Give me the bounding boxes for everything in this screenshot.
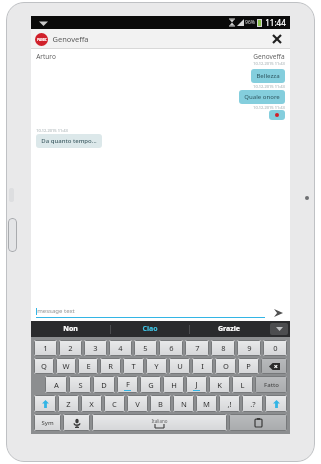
button[interactable] (275, 113, 279, 117)
staticText: Grazie (218, 324, 240, 334)
button[interactable]: 6 (159, 340, 183, 356)
staticText: Arturo (36, 52, 56, 61)
staticText: 6 (169, 343, 174, 353)
staticText: N (181, 399, 187, 409)
button[interactable]: Voice input (63, 414, 90, 431)
button[interactable]: Non (31, 321, 110, 337)
button[interactable]: 9 (237, 340, 261, 356)
staticText: 5 (143, 343, 148, 353)
button[interactable]: A (45, 376, 67, 393)
button[interactable]: 8 (211, 340, 235, 356)
button[interactable]: Backspace (261, 358, 287, 374)
button[interactable]: Shift (265, 395, 287, 412)
staticText: L (240, 380, 245, 390)
staticText: G (148, 380, 154, 390)
button[interactable]: O (215, 358, 236, 374)
button[interactable]: H (163, 376, 184, 393)
button[interactable]: T (123, 358, 144, 374)
staticText: M (203, 399, 210, 409)
button[interactable]: ,! (219, 395, 240, 412)
button[interactable]: E (78, 358, 98, 374)
button[interactable]: J (186, 376, 207, 393)
button[interactable]: F (117, 376, 138, 393)
button[interactable]: I (192, 358, 213, 374)
staticText: K (217, 380, 222, 390)
button[interactable]: Send (271, 306, 285, 320)
button[interactable]: Clipboard (229, 414, 287, 431)
staticText: U (177, 361, 183, 371)
button[interactable]: Close (268, 30, 286, 48)
button[interactable]: P (238, 358, 259, 374)
staticText: 1 (43, 343, 48, 353)
button[interactable]: 2 (59, 340, 82, 356)
staticText: 10.12.2015 11:43 (36, 128, 68, 133)
staticText: Z (66, 399, 71, 409)
staticText: ,! (227, 399, 232, 409)
button[interactable]: Da quanto tempo... (36, 134, 102, 148)
button[interactable]: S (69, 376, 91, 393)
staticText: F (126, 379, 130, 389)
button[interactable]: X (81, 395, 102, 412)
button[interactable]: 4 (109, 340, 132, 356)
staticText: H (171, 380, 177, 390)
button[interactable]: Sym (34, 414, 61, 431)
button[interactable]: Fatto (255, 376, 287, 393)
button[interactable]: G (140, 376, 161, 393)
button[interactable]: N (173, 395, 194, 412)
staticText: B (158, 399, 163, 409)
staticText: Genoveffa (253, 52, 285, 61)
button[interactable]: 3 (84, 340, 107, 356)
button[interactable]: W (56, 358, 76, 374)
staticText: E (86, 361, 91, 371)
staticText: V (135, 399, 140, 409)
button[interactable]: K (209, 376, 230, 393)
button[interactable]: R (100, 358, 121, 374)
staticText: 3 (93, 343, 98, 353)
staticText: Non (63, 324, 78, 334)
button[interactable]: Quale onore (239, 90, 285, 104)
button[interactable]: Italiano (92, 414, 227, 431)
staticText: 0 (273, 343, 278, 353)
staticText: Bellezza (256, 72, 280, 80)
button[interactable]: Shift (34, 395, 56, 412)
button[interactable]: Bellezza (251, 69, 285, 83)
staticText: P (246, 361, 251, 371)
staticText: 10.12.2015 11:43 (253, 84, 285, 89)
button[interactable]: More suggestions (270, 323, 288, 335)
button[interactable]: 1 (34, 340, 57, 356)
button[interactable]: D (93, 376, 115, 393)
staticText: 2 (68, 343, 73, 353)
staticText: A (54, 380, 59, 390)
staticText: T (131, 361, 136, 371)
staticText: Fatto (264, 381, 279, 389)
staticText: Q (41, 361, 47, 371)
staticText: Quale onore (244, 93, 280, 101)
button[interactable]: Ciao (111, 321, 189, 337)
button[interactable]: Q (34, 358, 54, 374)
button[interactable]: Grazie (190, 321, 268, 337)
staticText: R (108, 361, 113, 371)
button[interactable]: U (169, 358, 190, 374)
button[interactable]: L (232, 376, 253, 393)
staticText: 4 (118, 343, 123, 353)
staticText: .? (250, 399, 256, 409)
staticText: 10.12.2015 11:43 (253, 105, 285, 110)
button[interactable]: message text (36, 307, 265, 318)
staticText: C (112, 399, 117, 409)
button[interactable]: 7 (185, 340, 209, 356)
staticText: 10.12.2015 11:43 (253, 61, 285, 66)
staticText: Y (154, 361, 159, 371)
button[interactable]: .? (242, 395, 263, 412)
staticText: Sym (41, 419, 54, 427)
staticText: 96% (245, 19, 255, 26)
button[interactable]: Z (58, 395, 79, 412)
button[interactable]: 5 (134, 340, 157, 356)
button[interactable]: Y (146, 358, 167, 374)
button[interactable]: V (127, 395, 148, 412)
button[interactable]: M (196, 395, 217, 412)
staticText: 9 (247, 343, 252, 353)
button[interactable]: 0 (263, 340, 287, 356)
button[interactable]: B (150, 395, 171, 412)
button[interactable]: C (104, 395, 125, 412)
staticText: D (101, 380, 107, 390)
